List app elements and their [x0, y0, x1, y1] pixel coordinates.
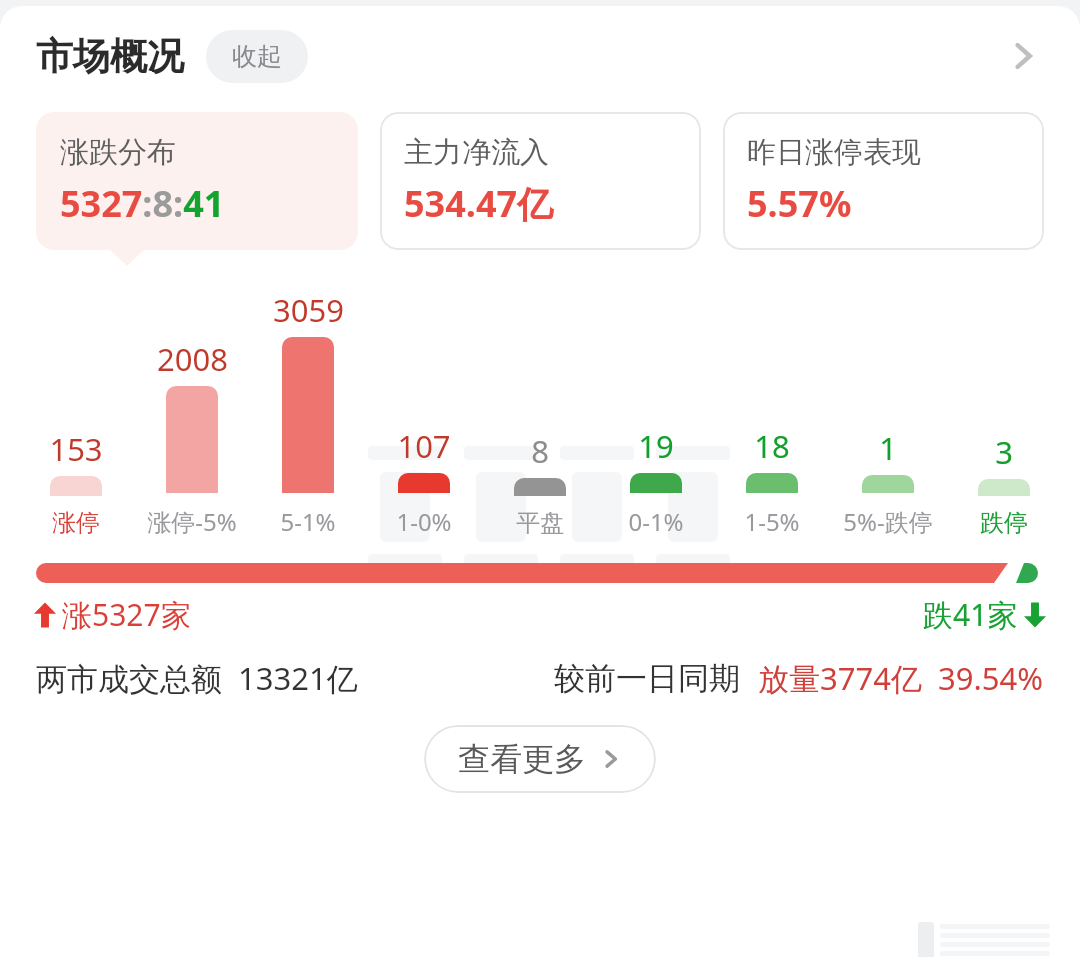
button[interactable]: 收起 [206, 30, 308, 83]
staticText: 1-5% [744, 505, 800, 538]
staticText: 市场概况 [36, 33, 184, 80]
staticText: 0-1% [628, 505, 684, 538]
staticText: 534.47亿 [404, 179, 554, 228]
staticText: 涨停-5% [147, 505, 237, 538]
staticText: 查看更多 [458, 739, 586, 779]
button[interactable]: 主力净流入 [380, 112, 701, 250]
button[interactable]: 昨日涨停表现 [723, 112, 1044, 250]
staticText: 跌停 [980, 508, 1028, 538]
staticText: 收起 [232, 41, 282, 72]
staticText: 3 [995, 431, 1013, 473]
button[interactable]: 涨跌分布 [36, 112, 358, 250]
staticText: 两市成交总额 13321亿 [36, 657, 358, 699]
staticText: 1 [879, 427, 897, 469]
staticText: 较前一日同期 [554, 659, 740, 698]
staticText: 5%-跌停 [843, 505, 933, 538]
button[interactable]: 查看市场概况详情 [994, 27, 1052, 85]
staticText: 放量3774亿 39.54% [758, 657, 1044, 699]
staticText: 涨5327家 [62, 594, 191, 635]
staticText: 8 [531, 430, 549, 472]
staticText: 153 [49, 428, 103, 470]
staticText: 3059 [273, 289, 344, 331]
staticText: 涨停 [52, 508, 100, 538]
button[interactable]: 查看更多 [424, 725, 656, 793]
staticText: 涨跌分布 [60, 134, 176, 171]
staticText: 5-1% [280, 505, 336, 538]
staticText: 19 [638, 425, 674, 467]
staticText: 昨日涨停表现 [747, 134, 921, 171]
staticText: 18 [754, 425, 790, 467]
staticText: 107 [397, 425, 451, 467]
staticText: 主力净流入 [404, 134, 549, 171]
staticText: 2008 [157, 338, 228, 380]
staticText: 平盘 [516, 508, 564, 538]
staticText: 5.57% [747, 179, 852, 228]
staticText: 1-0% [396, 505, 452, 538]
staticText: 跌41家 [923, 594, 1018, 635]
staticText: 5327:8:41 [60, 179, 225, 228]
